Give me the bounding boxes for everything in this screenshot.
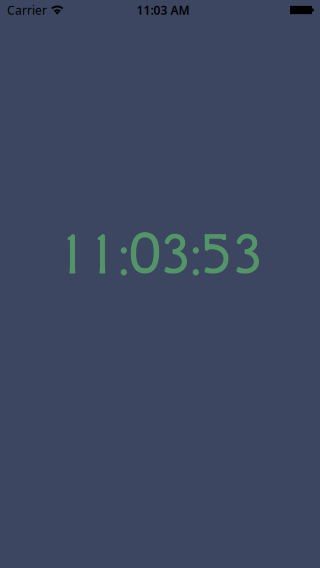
staticText: 11:03:53 [57,221,263,287]
staticText: 11:03 AM [136,2,189,18]
staticText: 11:03:53 [58,221,264,287]
staticText: Carrier [7,2,47,18]
staticText: 11:03:53 [57,222,263,288]
staticText: 11:03:53 [57,220,263,287]
staticText: 11:03:53 [56,221,262,287]
